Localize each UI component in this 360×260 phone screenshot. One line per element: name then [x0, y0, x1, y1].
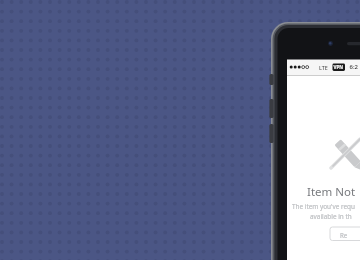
button[interactable]: Retry: [330, 227, 360, 241]
